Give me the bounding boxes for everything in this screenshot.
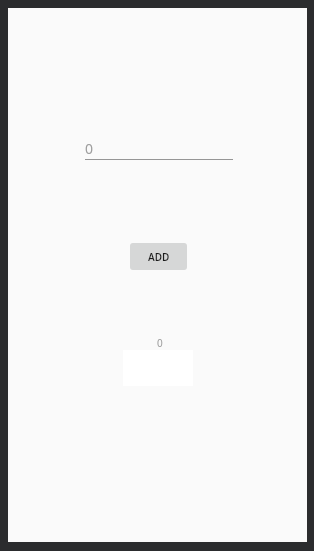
button[interactable]: Number input field [85, 139, 233, 160]
staticText: 0 [85, 139, 94, 158]
button[interactable]: ADD [130, 243, 187, 270]
staticText: 0 [157, 336, 163, 350]
staticText: ADD [148, 250, 170, 264]
